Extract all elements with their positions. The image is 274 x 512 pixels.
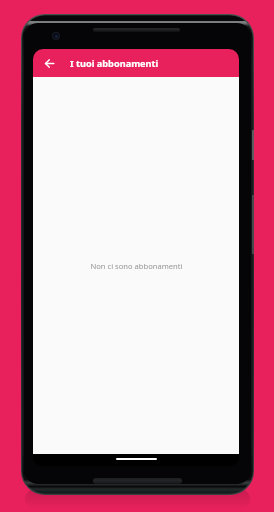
staticText: Non ci sono abbonamenti	[90, 261, 183, 271]
button[interactable]: Back	[39, 53, 59, 73]
staticText: I tuoi abbonamenti	[70, 57, 159, 70]
